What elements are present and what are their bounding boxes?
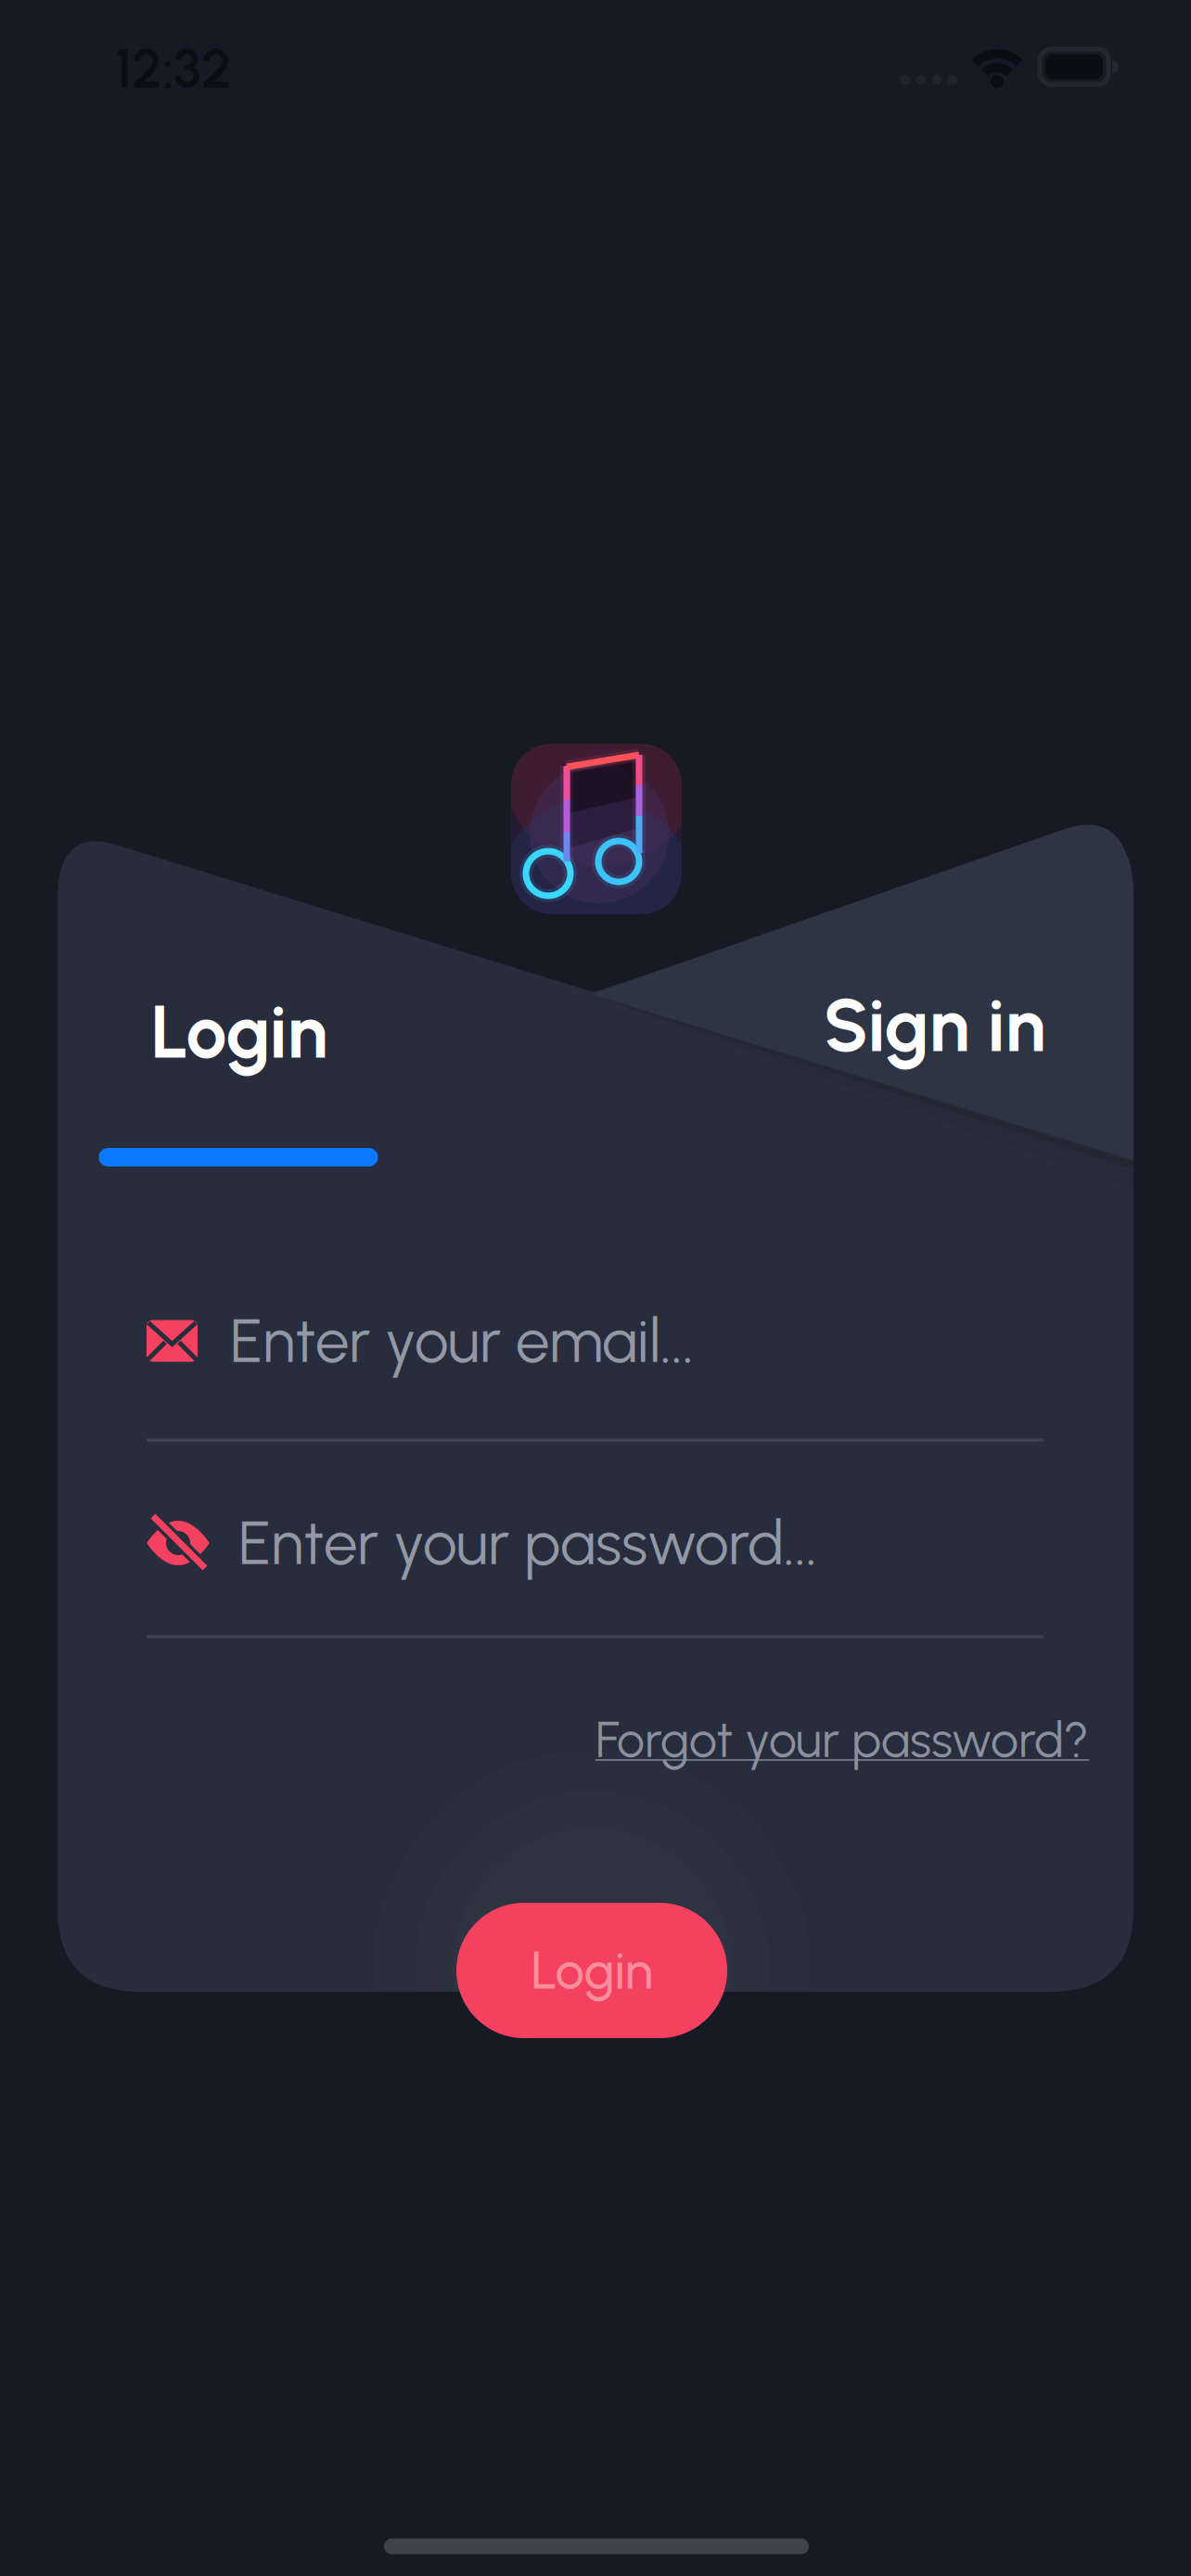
staticText: Login — [151, 988, 328, 1076]
button[interactable]: Enter your password... — [147, 1497, 1043, 1589]
staticText: 12:32 — [115, 36, 232, 101]
button[interactable]: Login — [456, 1903, 727, 2038]
button[interactable]: Enter your email... — [147, 1294, 1043, 1387]
staticText: Enter your password... — [238, 1507, 817, 1579]
staticText: Sign in — [823, 982, 1046, 1069]
staticText: Enter your email... — [230, 1305, 694, 1377]
button[interactable]: Sign in — [592, 825, 1133, 1160]
button[interactable]: Login — [151, 988, 328, 1076]
staticText: Forgot your password? — [595, 1710, 1089, 1769]
button[interactable]: Forgot your password? — [147, 1702, 1089, 1777]
staticText: Login — [531, 1939, 653, 2002]
